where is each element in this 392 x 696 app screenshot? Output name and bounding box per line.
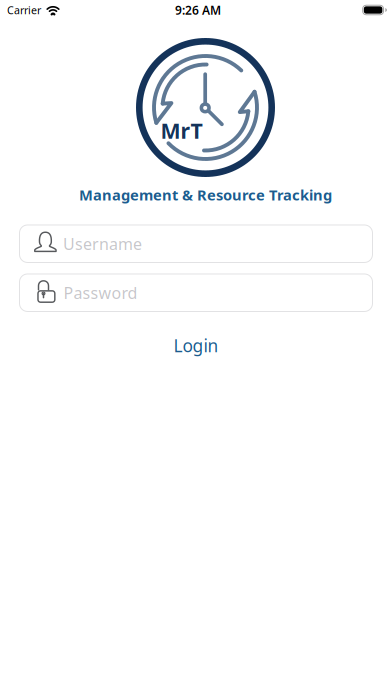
button[interactable]: Login	[19, 329, 373, 362]
staticText: Username	[63, 233, 142, 254]
staticText: Password	[64, 282, 138, 303]
button[interactable]: Username	[19, 224, 373, 263]
staticText: Login	[173, 334, 218, 357]
staticText: Management & Resource Tracking	[79, 185, 332, 204]
button[interactable]: Password	[19, 273, 373, 312]
staticText: Carrier	[7, 3, 41, 17]
staticText: MrT	[160, 116, 202, 145]
staticText: 9:26 AM	[175, 2, 221, 18]
